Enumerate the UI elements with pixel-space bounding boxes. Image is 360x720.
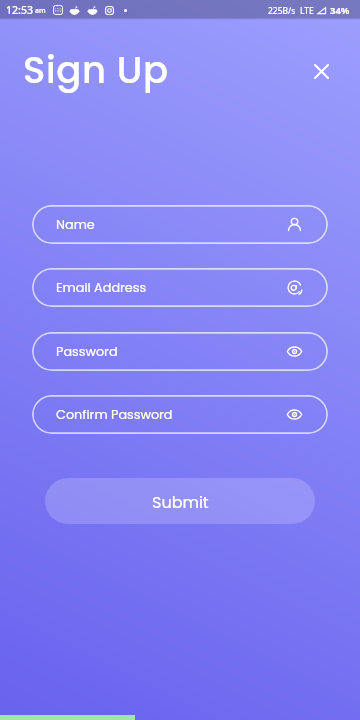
staticText: am	[35, 6, 46, 16]
staticText: 34%	[330, 4, 350, 17]
button[interactable]: Name	[32, 205, 328, 244]
button[interactable]: Password	[32, 332, 328, 371]
staticText: Confirm Password	[56, 406, 173, 424]
button[interactable]: Close	[307, 57, 335, 85]
staticText: Sign Up	[23, 44, 169, 96]
staticText: 225B/s	[268, 5, 296, 17]
button[interactable]: Submit	[45, 478, 315, 524]
staticText: LTE	[300, 5, 314, 17]
staticText: Email Address	[56, 279, 147, 297]
button[interactable]: Email Address	[32, 268, 328, 307]
staticText: 12:53	[6, 3, 34, 17]
button[interactable]: Confirm Password	[32, 395, 328, 434]
staticText: Password	[56, 343, 118, 361]
staticText: Submit	[152, 491, 209, 513]
staticText: Name	[56, 216, 95, 234]
